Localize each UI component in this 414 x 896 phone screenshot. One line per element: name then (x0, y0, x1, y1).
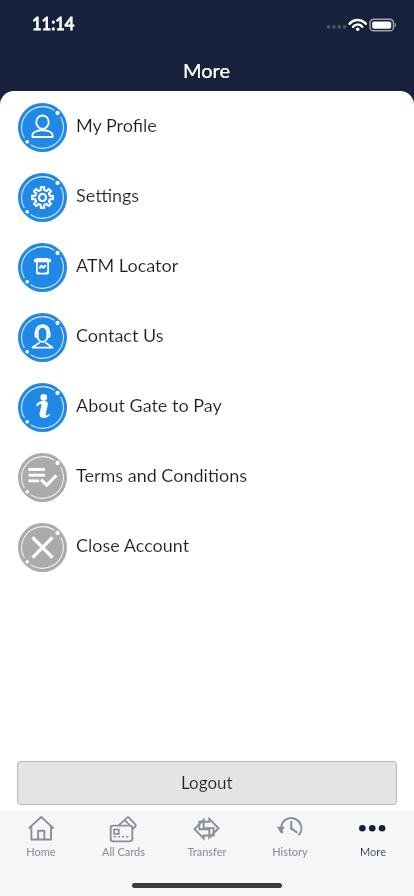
button[interactable]: Home (0, 811, 82, 867)
staticText: More (183, 58, 231, 82)
button[interactable]: ATM Locator (0, 232, 414, 302)
button[interactable]: History (248, 811, 331, 867)
staticText: My Profile (76, 114, 157, 136)
staticText: About Gate to Pay (76, 394, 222, 416)
staticText: Transfer (187, 845, 227, 858)
staticText: ATM Locator (76, 254, 179, 276)
staticText: Home (26, 845, 56, 858)
button[interactable]: Logout (17, 761, 397, 805)
staticText: Logout (181, 772, 233, 792)
button[interactable]: Transfer (165, 811, 248, 867)
button[interactable]: My Profile (0, 92, 414, 162)
button[interactable]: Contact Us (0, 302, 414, 372)
staticText: All Cards (102, 845, 145, 858)
button[interactable]: More (331, 811, 414, 867)
staticText: More (360, 845, 386, 858)
button[interactable]: About Gate to Pay (0, 372, 414, 442)
button[interactable]: Terms and Conditions (0, 442, 414, 512)
button[interactable]: Close Account (0, 512, 414, 582)
staticText: Terms and Conditions (76, 464, 248, 486)
staticText: Settings (76, 184, 140, 206)
button[interactable]: Settings (0, 162, 414, 232)
staticText: 11:14 (32, 14, 75, 34)
button[interactable]: All Cards (82, 811, 165, 867)
staticText: History (272, 845, 308, 858)
staticText: Close Account (76, 534, 190, 556)
staticText: Contact Us (76, 324, 164, 346)
